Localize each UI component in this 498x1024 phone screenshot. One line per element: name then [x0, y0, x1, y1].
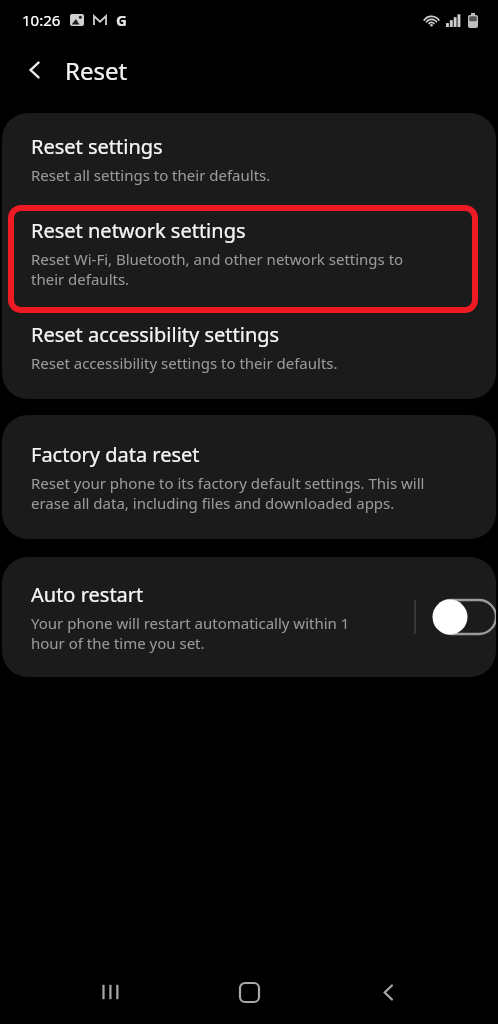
button[interactable]: Factory data reset — [2, 415, 496, 539]
button[interactable]: Factory data reset — [2, 415, 496, 539]
staticText: Reset — [65, 54, 128, 87]
button[interactable]: Back — [14, 49, 56, 91]
staticText: their defaults. — [31, 269, 130, 289]
button[interactable]: Recent apps — [83, 964, 139, 1020]
staticText: G — [116, 10, 127, 30]
staticText: Reset your phone to its factory default … — [31, 473, 425, 493]
button[interactable]: Reset accessibility settings — [2, 305, 496, 399]
button[interactable]: Auto restart — [2, 557, 496, 677]
staticText: Reset accessibility settings to their de… — [31, 353, 338, 373]
button[interactable]: Reset settings — [2, 113, 496, 201]
button[interactable]: Auto restart toggle — [412, 582, 496, 652]
staticText: hour of the time you set. — [31, 633, 205, 653]
button[interactable]: Home — [221, 964, 277, 1020]
staticText: Your phone will restart automatically wi… — [31, 613, 350, 633]
staticText: Reset all settings to their defaults. — [31, 165, 271, 185]
staticText: 10:26 — [22, 10, 61, 30]
staticText: erase all data, including files and down… — [31, 493, 395, 513]
staticText: Factory data reset — [31, 441, 200, 468]
staticText: Auto restart — [31, 581, 144, 608]
button[interactable]: Reset network settings — [2, 201, 496, 305]
staticText: Reset network settings — [31, 217, 246, 244]
staticText: Reset Wi-Fi, Bluetooth, and other networ… — [31, 249, 404, 269]
staticText: Reset accessibility settings — [31, 321, 280, 348]
staticText: Reset settings — [31, 133, 163, 160]
button[interactable]: Back — [360, 964, 416, 1020]
